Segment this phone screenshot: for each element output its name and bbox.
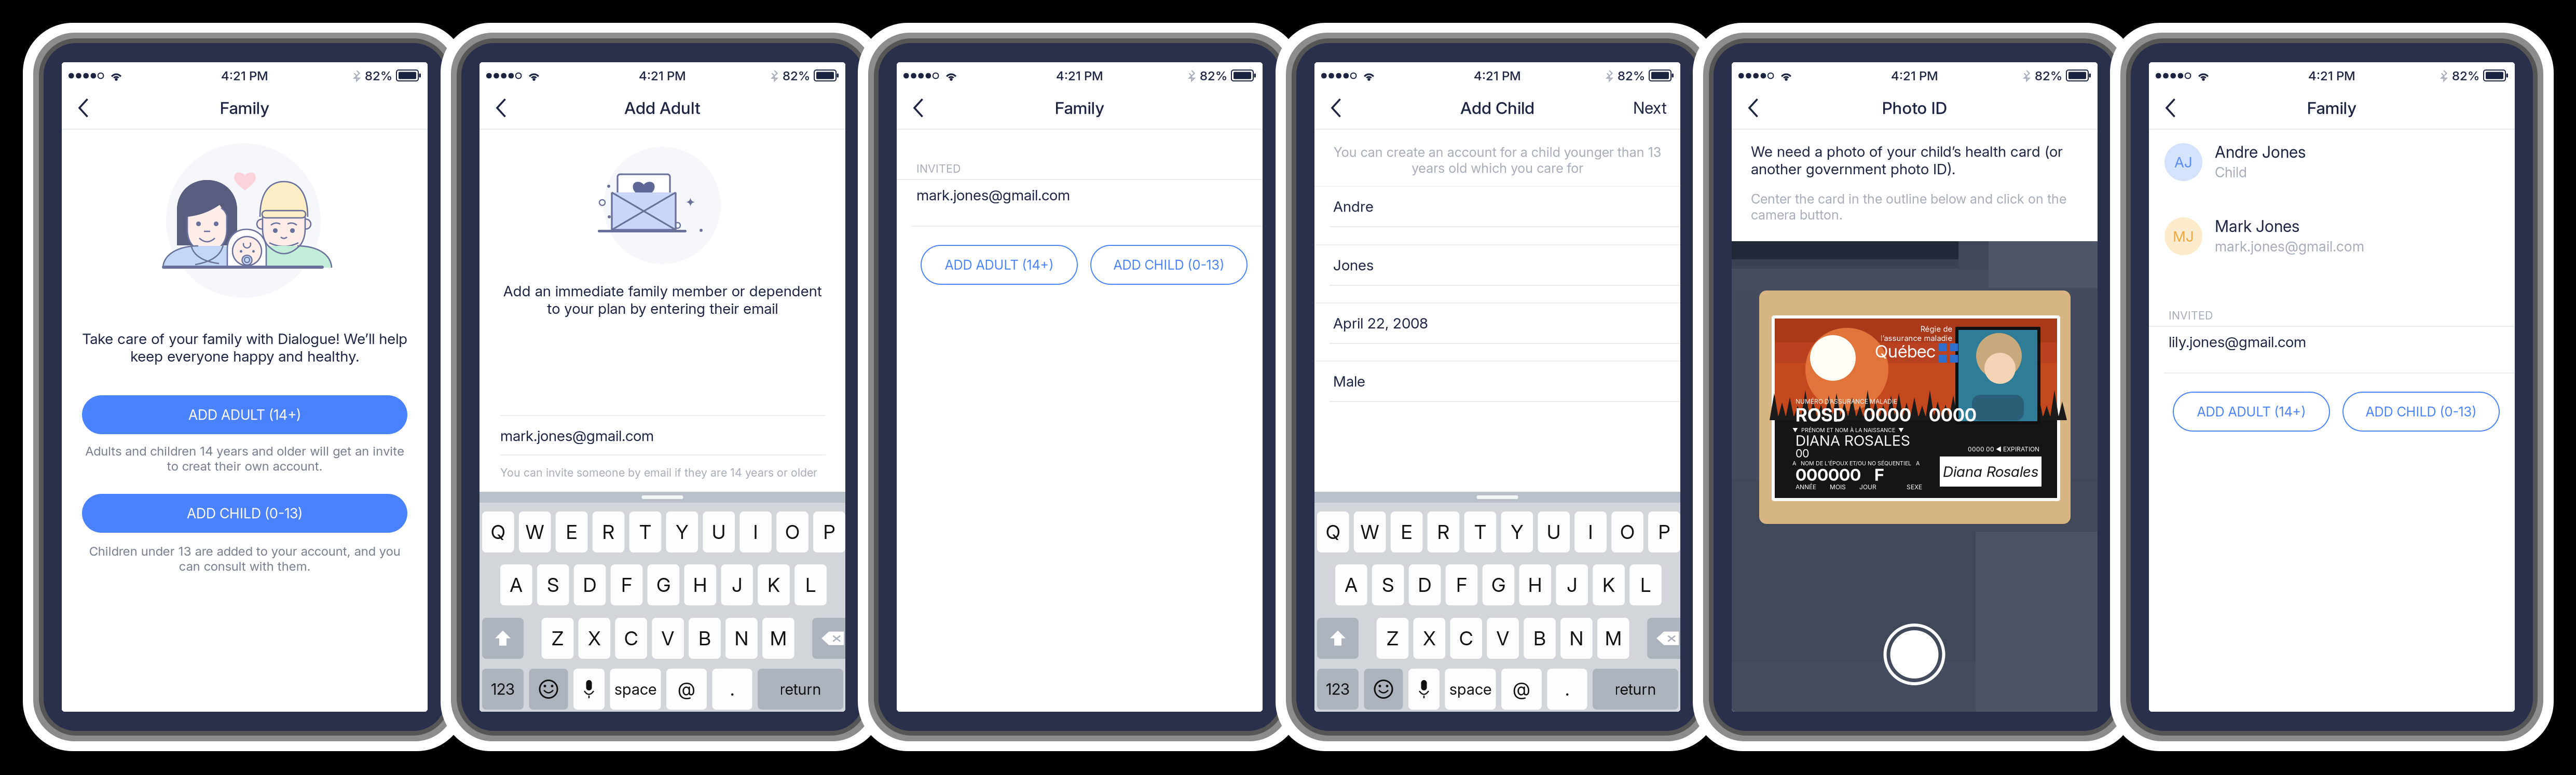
- button[interactable]: Back: [1732, 86, 1775, 130]
- button[interactable]: Z: [1377, 618, 1408, 659]
- button[interactable]: W: [1354, 511, 1386, 552]
- button[interactable]: Y: [1501, 511, 1533, 552]
- button[interactable]: 123: [1317, 669, 1359, 710]
- button[interactable]: Z: [542, 618, 574, 659]
- button[interactable]: A: [1335, 564, 1367, 605]
- button[interactable]: .: [1547, 669, 1587, 710]
- button[interactable]: Q: [482, 511, 514, 552]
- button[interactable]: U: [703, 511, 735, 552]
- button[interactable]: Back: [2149, 86, 2193, 130]
- button[interactable]: Y: [666, 511, 698, 552]
- button[interactable]: MJ: [2164, 217, 2486, 256]
- button[interactable]: T: [629, 511, 661, 552]
- staticText: @: [678, 678, 695, 700]
- button[interactable]: E: [1391, 511, 1423, 552]
- staticText: mark.jones@gmail.com: [2215, 238, 2364, 255]
- button[interactable]: I: [1575, 511, 1607, 552]
- button[interactable]: Dictation: [573, 669, 605, 710]
- button[interactable]: R: [592, 511, 624, 552]
- button[interactable]: R: [1427, 511, 1459, 552]
- button[interactable]: T: [1464, 511, 1496, 552]
- button[interactable]: Emoji: [529, 669, 568, 710]
- button[interactable]: V: [1487, 618, 1519, 659]
- button[interactable]: J: [721, 564, 753, 605]
- button[interactable]: Next: [1602, 86, 1667, 130]
- button[interactable]: Shift: [482, 618, 524, 659]
- button[interactable]: L: [1630, 564, 1662, 605]
- staticText: A: [1345, 573, 1358, 597]
- staticText: 82%: [783, 68, 810, 83]
- button[interactable]: X: [578, 618, 610, 659]
- button[interactable]: K: [1593, 564, 1625, 605]
- button[interactable]: SEND INVITE: [500, 494, 825, 533]
- button[interactable]: ADD CHILD (0-13): [2343, 392, 2499, 431]
- button[interactable]: M: [1597, 618, 1629, 659]
- button[interactable]: M: [762, 618, 794, 659]
- button[interactable]: ADD CHILD (0-13): [1091, 245, 1247, 284]
- button[interactable]: .: [712, 669, 752, 710]
- staticText: 82%: [2035, 68, 2062, 83]
- button[interactable]: N: [1560, 618, 1592, 659]
- button[interactable]: F: [611, 564, 643, 605]
- button[interactable]: ADD ADULT (14+): [82, 395, 407, 434]
- button[interactable]: E: [556, 511, 588, 552]
- button[interactable]: B: [1524, 618, 1556, 659]
- button[interactable]: L: [795, 564, 827, 605]
- button[interactable]: C: [1450, 618, 1482, 659]
- button[interactable]: O: [776, 511, 808, 552]
- button[interactable]: ADD ADULT (14+): [2173, 392, 2330, 431]
- button[interactable]: Q: [1317, 511, 1349, 552]
- button[interactable]: W: [519, 511, 551, 552]
- staticText: I: [1588, 520, 1593, 544]
- button[interactable]: S: [1372, 564, 1404, 605]
- button[interactable]: AJ: [2164, 143, 2486, 182]
- button[interactable]: @: [666, 669, 707, 710]
- button[interactable]: ADD ADULT (14+): [921, 245, 1077, 284]
- button[interactable]: D: [1409, 564, 1441, 605]
- button[interactable]: ADD CHILD (0-13): [82, 494, 407, 533]
- button[interactable]: G: [647, 564, 679, 605]
- button[interactable]: D: [574, 564, 606, 605]
- button[interactable]: Delete: [812, 618, 854, 659]
- button[interactable]: return: [758, 669, 843, 710]
- button[interactable]: Shift: [1317, 618, 1359, 659]
- staticText: K: [1603, 573, 1615, 597]
- button[interactable]: B: [689, 618, 721, 659]
- button[interactable]: P: [1648, 511, 1680, 552]
- staticText: F: [1874, 465, 1884, 485]
- staticText: 00: [1796, 447, 1809, 460]
- button[interactable]: G: [1482, 564, 1514, 605]
- button[interactable]: Back: [897, 86, 940, 130]
- button[interactable]: H: [1519, 564, 1551, 605]
- button[interactable]: return: [1593, 669, 1678, 710]
- button[interactable]: Back: [1314, 86, 1358, 130]
- button[interactable]: O: [1611, 511, 1643, 552]
- button[interactable]: F: [1446, 564, 1478, 605]
- staticText: Center the card in the outline below and…: [1751, 191, 2066, 223]
- button[interactable]: S: [537, 564, 569, 605]
- button[interactable]: Delete: [1647, 618, 1689, 659]
- staticText: Z: [552, 627, 564, 650]
- button[interactable]: Back: [62, 86, 105, 130]
- button[interactable]: P: [813, 511, 845, 552]
- button[interactable]: 123: [482, 669, 524, 710]
- button[interactable]: @: [1501, 669, 1542, 710]
- button[interactable]: Back: [479, 86, 523, 130]
- button[interactable]: space: [610, 669, 661, 710]
- button[interactable]: A: [500, 564, 532, 605]
- button[interactable]: K: [758, 564, 790, 605]
- button[interactable]: I: [740, 511, 772, 552]
- button[interactable]: J: [1556, 564, 1588, 605]
- button[interactable]: U: [1538, 511, 1570, 552]
- button[interactable]: V: [652, 618, 684, 659]
- button[interactable]: Dictation: [1408, 669, 1440, 710]
- staticText: ROSD: [1796, 404, 1846, 426]
- staticText: INVITED: [2169, 309, 2213, 322]
- staticText: G: [656, 573, 670, 597]
- button[interactable]: H: [684, 564, 716, 605]
- button[interactable]: N: [726, 618, 757, 659]
- button[interactable]: space: [1445, 669, 1496, 710]
- button[interactable]: X: [1413, 618, 1445, 659]
- button[interactable]: Emoji: [1364, 669, 1403, 710]
- button[interactable]: C: [615, 618, 647, 659]
